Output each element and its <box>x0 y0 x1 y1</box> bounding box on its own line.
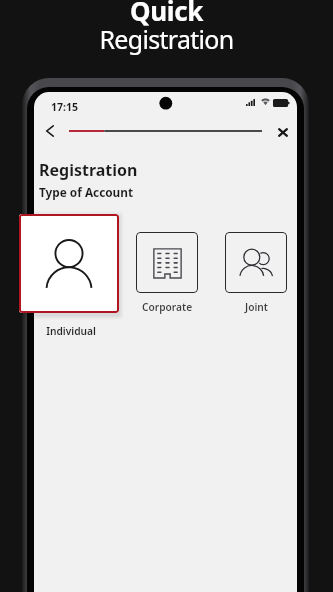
button[interactable] <box>136 232 198 293</box>
staticText: Registration <box>0 22 333 56</box>
button[interactable] <box>225 232 287 293</box>
staticText: 17:15 <box>51 100 78 114</box>
button[interactable] <box>19 214 119 313</box>
staticText: Individual <box>21 324 121 338</box>
staticText: Joint <box>245 300 268 314</box>
staticText: Registration <box>39 159 138 181</box>
staticText: Quick <box>0 0 333 28</box>
staticText: Type of Account <box>39 184 134 200</box>
button[interactable]: Back <box>38 119 62 143</box>
button[interactable]: Close <box>271 120 295 144</box>
staticText: Corporate <box>142 300 193 314</box>
